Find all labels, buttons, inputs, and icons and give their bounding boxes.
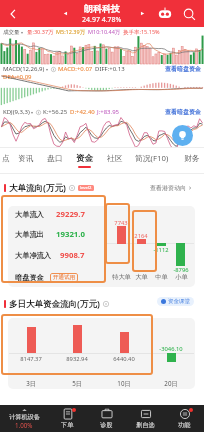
staticText: 29229.7 [56, 209, 85, 219]
staticText: 点 [2, 153, 10, 163]
button[interactable]: 查看港资动向 [150, 183, 192, 192]
staticText: 简况(F10) [135, 153, 169, 164]
staticText: MACD:+0.07 [58, 65, 93, 73]
staticText: 8147.37 [20, 355, 42, 363]
staticText: 暗盘资金 [15, 273, 44, 282]
button[interactable]: 社区 [102, 148, 128, 173]
button[interactable]: Back [0, 0, 26, 27]
staticText: 1.00% [15, 421, 33, 429]
staticText: 资讯 [18, 153, 34, 163]
staticText: 量:30.37万 [27, 28, 54, 36]
staticText: J:+83.95 [97, 108, 120, 116]
button[interactable]: 财务 [179, 148, 204, 173]
staticText: 大单流向(万元) [9, 182, 66, 194]
staticText: M5:12.39万 [56, 28, 86, 36]
button[interactable]: 资讯 [13, 148, 39, 173]
staticText: DIFF:+0.13 [95, 65, 125, 73]
staticText: ▾ [46, 67, 49, 72]
button[interactable]: 查看暗盘资金 [165, 65, 201, 73]
staticText: 19321.0 [56, 229, 85, 239]
button[interactable]: 查看暗盘资金 [165, 108, 201, 116]
staticText: 下单 [61, 421, 74, 429]
staticText: 大单流出 [15, 230, 44, 239]
staticText: 3日 [26, 379, 36, 387]
staticText: ▾ [21, 30, 24, 35]
button[interactable]: 开通试用 [53, 274, 75, 281]
staticText: M10:10.44万 [88, 28, 121, 36]
button[interactable]: 资金 [71, 148, 97, 173]
staticText: -3046.10 [159, 345, 183, 353]
staticText: 5日 [72, 379, 82, 387]
staticText: 功能 [178, 421, 191, 429]
staticText: 盘口 [47, 153, 63, 163]
button[interactable]: 资金课堂 [161, 298, 190, 305]
staticText: D:+42.40 [70, 108, 95, 116]
staticText: 10日 [117, 379, 131, 387]
staticText: -1112 [153, 246, 169, 254]
staticText: 查看港资动向 [150, 184, 186, 192]
staticText: K:+56.25 [43, 108, 68, 116]
button[interactable]: 计算机设备 [0, 405, 48, 432]
staticText: 资金 [76, 153, 93, 164]
staticText: 删自选 [136, 421, 155, 429]
staticText: MACD(12,26,9) [3, 65, 45, 73]
staticText: 多日大单资金流向(万元) [9, 298, 100, 310]
button[interactable]: 诊股 [87, 405, 126, 432]
staticText: 20日 [164, 379, 178, 387]
staticText: 9908.7 [60, 250, 85, 260]
staticText: 2164 [134, 232, 148, 240]
staticText: ▾ [31, 110, 34, 115]
staticText: 8932.94 [66, 355, 88, 363]
staticText: 中单 [155, 273, 168, 281]
button[interactable]: 盘口 [42, 148, 68, 173]
staticText: 24.97 4.78% [82, 15, 122, 25]
staticText: 诊股 [100, 421, 113, 429]
staticText: 大单 [135, 273, 148, 281]
staticText: 大单流入 [15, 210, 44, 219]
staticText: 换手率:15.15% [123, 28, 160, 36]
staticText: 朗科科技 [84, 3, 120, 14]
staticText: 6440.40 [113, 355, 135, 363]
button[interactable]: Smart tips [172, 125, 193, 146]
button[interactable]: 简况(F10) [132, 148, 172, 173]
staticText: 特大单 [112, 273, 131, 281]
staticText: level2 [80, 185, 92, 191]
staticText: 成交量 [3, 29, 20, 36]
staticText: 财务 [184, 153, 200, 163]
staticText: 社区 [107, 153, 123, 163]
staticText: 大单净流入 [15, 251, 51, 260]
staticText: KDJ(9,3,3) [3, 108, 30, 116]
button[interactable]: Previous stock [62, 10, 69, 17]
button[interactable]: Next stock [139, 10, 146, 17]
staticText: -8796 [173, 266, 189, 274]
button[interactable]: 点 [0, 148, 14, 173]
staticText: 7743 [114, 219, 128, 227]
staticText: 开通试用 [53, 274, 75, 281]
button[interactable]: 下单 [48, 405, 87, 432]
button[interactable]: Search [177, 2, 201, 26]
button[interactable]: 功能 [165, 405, 204, 432]
button[interactable]: AI assistant [153, 2, 177, 26]
staticText: 小单 [175, 273, 188, 281]
staticText: 资金课堂 [168, 298, 190, 305]
button[interactable]: 删自选 [126, 405, 165, 432]
staticText: 计算机设备 [9, 413, 40, 421]
staticText: DEA:+0.09 [3, 73, 32, 81]
